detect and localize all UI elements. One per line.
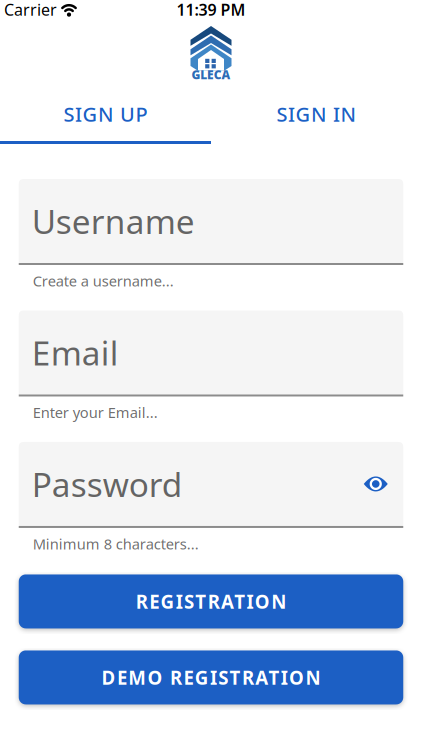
staticText: REGISTRATION <box>136 589 286 614</box>
staticText: SIGN UP <box>63 101 147 127</box>
button[interactable]: Username <box>19 179 403 263</box>
button[interactable]: Email <box>19 310 403 394</box>
staticText: Minimum 8 characters... <box>33 534 199 553</box>
staticText: Password <box>32 462 183 506</box>
staticText: GLECA <box>191 66 231 82</box>
button[interactable] <box>363 476 403 492</box>
staticText: Enter your Email... <box>33 402 158 422</box>
button[interactable]: DEMO REGISTRATION <box>19 650 403 704</box>
button[interactable]: REGISTRATION <box>19 574 403 628</box>
staticText: DEMO REGISTRATION <box>102 665 320 690</box>
staticText: SIGN IN <box>276 101 356 127</box>
staticText: Carrier <box>4 0 57 20</box>
button[interactable]: Password <box>19 442 403 526</box>
staticText: Create a username... <box>33 271 174 290</box>
button[interactable]: SIGN IN <box>211 95 422 133</box>
staticText: Username <box>32 199 195 243</box>
staticText: 11:39 PM <box>176 0 245 20</box>
button[interactable]: SIGN UP <box>0 95 211 133</box>
staticText: Email <box>32 330 119 375</box>
